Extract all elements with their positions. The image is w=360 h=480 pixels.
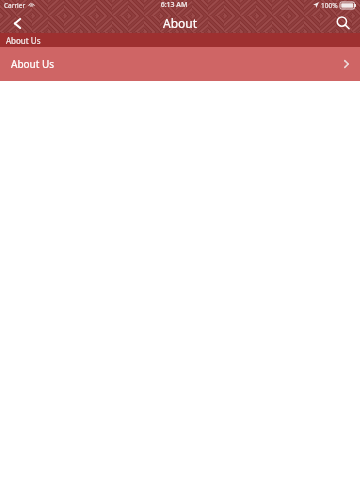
staticText: About Us: [6, 35, 41, 46]
staticText: 100%: [321, 1, 338, 10]
staticText: About: [163, 15, 198, 31]
button[interactable]: Search: [326, 13, 360, 33]
staticText: 6:13 AM: [35, 0, 313, 10]
staticText: About Us: [11, 57, 344, 71]
button[interactable]: Back: [0, 13, 34, 33]
button[interactable]: About Us: [0, 47, 360, 81]
staticText: Carrier: [4, 1, 26, 10]
